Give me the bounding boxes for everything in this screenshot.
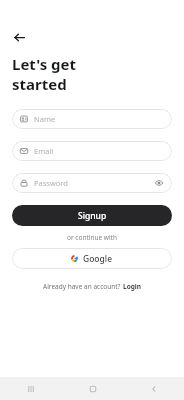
staticText: Login <box>123 282 141 291</box>
button[interactable]: Show password <box>154 178 164 188</box>
button[interactable]: Back <box>123 377 184 400</box>
staticText: Password <box>34 178 154 188</box>
button[interactable]: Home <box>62 377 123 400</box>
button[interactable]: Signup <box>12 205 172 226</box>
button[interactable]: Password <box>12 173 172 193</box>
staticText: Google <box>83 253 113 265</box>
button[interactable]: Google <box>12 248 172 269</box>
staticText: Email <box>34 146 164 156</box>
button[interactable]: Recent apps <box>0 377 62 400</box>
staticText: Already have an account? <box>43 282 123 291</box>
button[interactable]: Login <box>123 282 141 291</box>
button[interactable]: Back <box>8 26 30 48</box>
staticText: Let's get started <box>12 54 77 94</box>
button[interactable]: Name <box>12 109 172 129</box>
staticText: Name <box>34 114 164 124</box>
staticText: or continue with <box>67 233 117 242</box>
staticText: Signup <box>78 210 107 222</box>
button[interactable]: Email <box>12 141 172 161</box>
